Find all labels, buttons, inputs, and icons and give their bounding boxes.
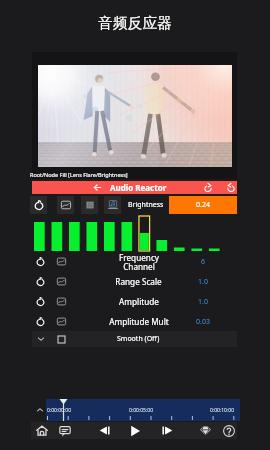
button[interactable]: Keyframe [57, 196, 74, 214]
button[interactable]: Grid [81, 196, 98, 214]
staticText: 6 [201, 257, 206, 267]
staticText: Amplitude [119, 296, 159, 307]
staticText: Root/Node Fill [Lens Flare/Brightness] [30, 171, 128, 178]
staticText: 1.0 [198, 297, 208, 307]
button[interactable]: Help [220, 422, 238, 439]
button[interactable]: Amplitude Mult [32, 312, 237, 331]
button[interactable]: Redo [226, 183, 236, 193]
button[interactable]: Undo [203, 183, 213, 193]
staticText: 0.03 [196, 317, 210, 327]
button[interactable]: Pro features [196, 422, 214, 439]
button[interactable]: Reset [30, 196, 47, 214]
button[interactable]: Frequency Channel [32, 252, 237, 271]
staticText: Range Scale [115, 276, 162, 287]
button[interactable]: Expand timeline [33, 403, 47, 417]
staticText: 音频反应器 [98, 14, 172, 33]
button[interactable]: Home [33, 422, 51, 439]
button[interactable]: Amplitude [32, 292, 237, 311]
staticText: Frequency Channel [119, 252, 159, 271]
staticText: 0:00:10:00 [210, 407, 235, 414]
button[interactable]: Audio [104, 196, 121, 214]
staticText: Audio Reactor [110, 182, 167, 193]
button[interactable]: Comments [56, 422, 74, 439]
staticText: 1.0 [198, 277, 208, 287]
button[interactable]: Play [126, 422, 144, 439]
button[interactable]: 0.24 [169, 196, 237, 214]
staticText: 0.24 [196, 200, 210, 210]
button[interactable]: Range Scale [32, 272, 237, 291]
staticText: Brightness [128, 200, 164, 210]
button[interactable]: Previous frame [95, 422, 113, 439]
other: Back [93, 183, 102, 192]
staticText: 0:00:05:00 [129, 407, 154, 414]
staticText: Amplitude Mult [109, 316, 169, 327]
button[interactable]: Next frame [158, 422, 176, 439]
button[interactable]: 0:00:00:00 [46, 399, 240, 421]
staticText: 0:00:00:00 [47, 407, 72, 414]
button[interactable]: Smooth (Off) [32, 331, 237, 347]
staticText: Smooth (Off) [117, 334, 160, 344]
button[interactable]: Back [32, 181, 237, 194]
